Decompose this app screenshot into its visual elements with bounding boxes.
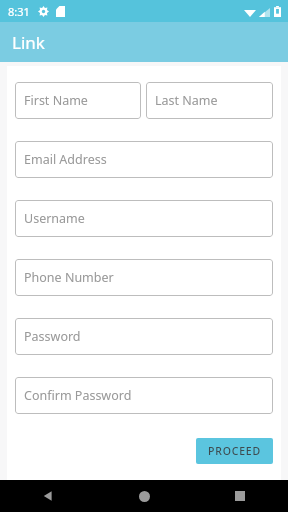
button[interactable]: Phone Number <box>15 259 273 296</box>
button[interactable]: First Name <box>15 82 141 119</box>
button[interactable]: Back <box>0 480 96 512</box>
staticText: Phone Number <box>24 269 114 286</box>
staticText: Last Name <box>155 92 218 109</box>
staticText: Link <box>12 31 45 54</box>
button[interactable]: Password <box>15 318 273 355</box>
staticText: Username <box>24 210 85 227</box>
button[interactable]: Recent apps <box>192 480 288 512</box>
staticText: 8:31 <box>8 4 30 19</box>
button[interactable]: Home <box>96 480 192 512</box>
staticText: Confirm Password <box>24 387 132 404</box>
staticText: Email Address <box>24 151 107 168</box>
staticText: PROCEED <box>208 444 261 458</box>
button[interactable]: Confirm Password <box>15 377 273 414</box>
button[interactable]: PROCEED <box>196 438 273 464</box>
button[interactable]: Username <box>15 200 273 237</box>
button[interactable]: Last Name <box>146 82 273 119</box>
button[interactable]: Email Address <box>15 141 273 178</box>
staticText: First Name <box>24 92 88 109</box>
staticText: Password <box>24 328 81 345</box>
